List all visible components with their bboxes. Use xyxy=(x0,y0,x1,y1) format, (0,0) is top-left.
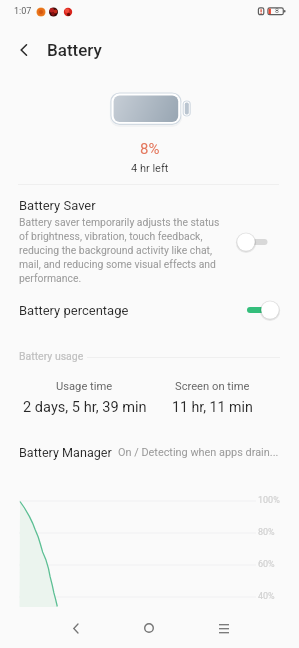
button[interactable]: Back xyxy=(59,612,91,644)
staticText: 60% xyxy=(258,559,275,570)
button[interactable]: Battery percentage xyxy=(0,292,299,328)
staticText: Usage time xyxy=(56,380,113,393)
button[interactable]: Battery Saver xyxy=(0,193,299,289)
staticText: Screen on time xyxy=(175,380,250,393)
staticText: 8 xyxy=(275,7,279,15)
staticText: 11 hr, 11 min xyxy=(172,399,253,416)
staticText: Battery Manager xyxy=(19,445,112,460)
staticText: Battery saver temporarily adjusts the st… xyxy=(19,216,225,285)
staticText: On / Detecting when apps drain... xyxy=(118,446,279,459)
staticText: 2 days, 5 hr, 39 min xyxy=(23,398,147,415)
staticText: Battery xyxy=(47,40,102,60)
staticText: 1:07 xyxy=(14,6,32,17)
staticText: 4 hr left xyxy=(131,162,169,175)
button[interactable]: Recents xyxy=(208,612,240,644)
button[interactable]: Home xyxy=(133,612,165,644)
staticText: 100% xyxy=(258,495,280,506)
button[interactable]: Battery Manager xyxy=(0,439,299,466)
staticText: Battery usage xyxy=(19,350,84,362)
button[interactable]: Back xyxy=(11,37,37,63)
staticText: Battery Saver xyxy=(19,198,96,213)
staticText: Battery percentage xyxy=(19,303,129,318)
staticText: 40% xyxy=(258,591,275,602)
staticText: 80% xyxy=(258,527,275,538)
staticText: 8% xyxy=(140,140,160,158)
